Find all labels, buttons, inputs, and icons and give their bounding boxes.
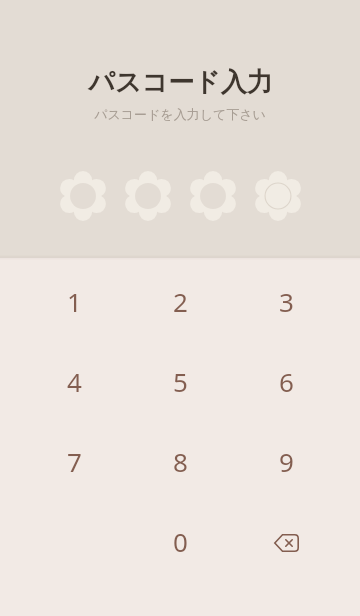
staticText: パスコード入力 (88, 66, 273, 99)
button[interactable]: 2 (144, 265, 216, 337)
staticText: 9 (279, 444, 294, 479)
button[interactable]: 6 (250, 345, 322, 417)
button[interactable]: 8 (144, 425, 216, 497)
staticText: 4 (67, 364, 82, 399)
button[interactable]: 3 (250, 265, 322, 337)
button[interactable]: 4 (38, 345, 110, 417)
staticText: 0 (173, 524, 188, 559)
staticText: 1 (67, 284, 82, 319)
staticText: 7 (67, 444, 82, 479)
button[interactable]: 0 (144, 505, 216, 577)
staticText: パスコードを入力して下さい (94, 106, 266, 122)
staticText: 5 (173, 364, 188, 399)
button[interactable]: 5 (144, 345, 216, 417)
staticText: 3 (279, 284, 294, 319)
staticText: 2 (173, 284, 188, 319)
button[interactable]: 7 (38, 425, 110, 497)
button[interactable]: 1 (38, 265, 110, 337)
staticText: 6 (279, 364, 294, 399)
staticText: 8 (173, 444, 188, 479)
button[interactable]: Backspace (250, 505, 322, 577)
button[interactable]: 9 (250, 425, 322, 497)
